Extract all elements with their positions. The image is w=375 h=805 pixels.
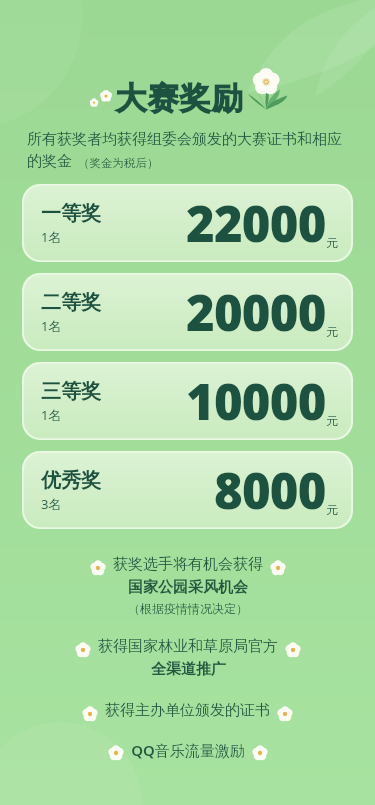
staticText: 所有获奖者均获得组委会颁发的大赛证书和相应	[27, 130, 342, 149]
staticText: 大赛奖励	[115, 79, 243, 118]
staticText: 元	[326, 324, 338, 339]
staticText: 元	[326, 413, 338, 428]
button[interactable]: 优秀奖	[22, 451, 353, 529]
button[interactable]: 三等奖	[22, 362, 353, 440]
staticText: 元	[326, 235, 338, 250]
staticText: 10000	[186, 368, 326, 435]
button[interactable]: 一等奖	[22, 184, 353, 262]
staticText: QQ音乐流量激励	[131, 740, 245, 760]
staticText: 1名	[41, 406, 62, 424]
staticText: 20000	[186, 279, 326, 346]
staticText: 三等奖	[41, 379, 101, 404]
staticText: 获得主办单位颁发的证书	[105, 701, 270, 720]
staticText: 优秀奖	[41, 468, 101, 493]
staticText: 3名	[41, 495, 62, 513]
staticText: （奖金为税后）	[78, 156, 159, 170]
staticText: 国家公园采风机会	[128, 578, 248, 597]
staticText: 1名	[41, 228, 62, 246]
staticText: 全渠道推广	[151, 660, 226, 679]
staticText: （根据疫情情况决定）	[128, 601, 248, 616]
staticText: 二等奖	[41, 290, 101, 315]
button[interactable]: 二等奖	[22, 273, 353, 351]
staticText: 获奖选手将有机会获得	[113, 555, 263, 574]
staticText: 一等奖	[41, 201, 101, 226]
staticText: 22000	[186, 190, 326, 257]
staticText: 1名	[41, 317, 62, 335]
staticText: 获得国家林业和草原局官方	[98, 637, 278, 656]
staticText: 的奖金	[27, 152, 72, 171]
staticText: 元	[326, 502, 338, 517]
staticText: 8000	[214, 457, 326, 524]
